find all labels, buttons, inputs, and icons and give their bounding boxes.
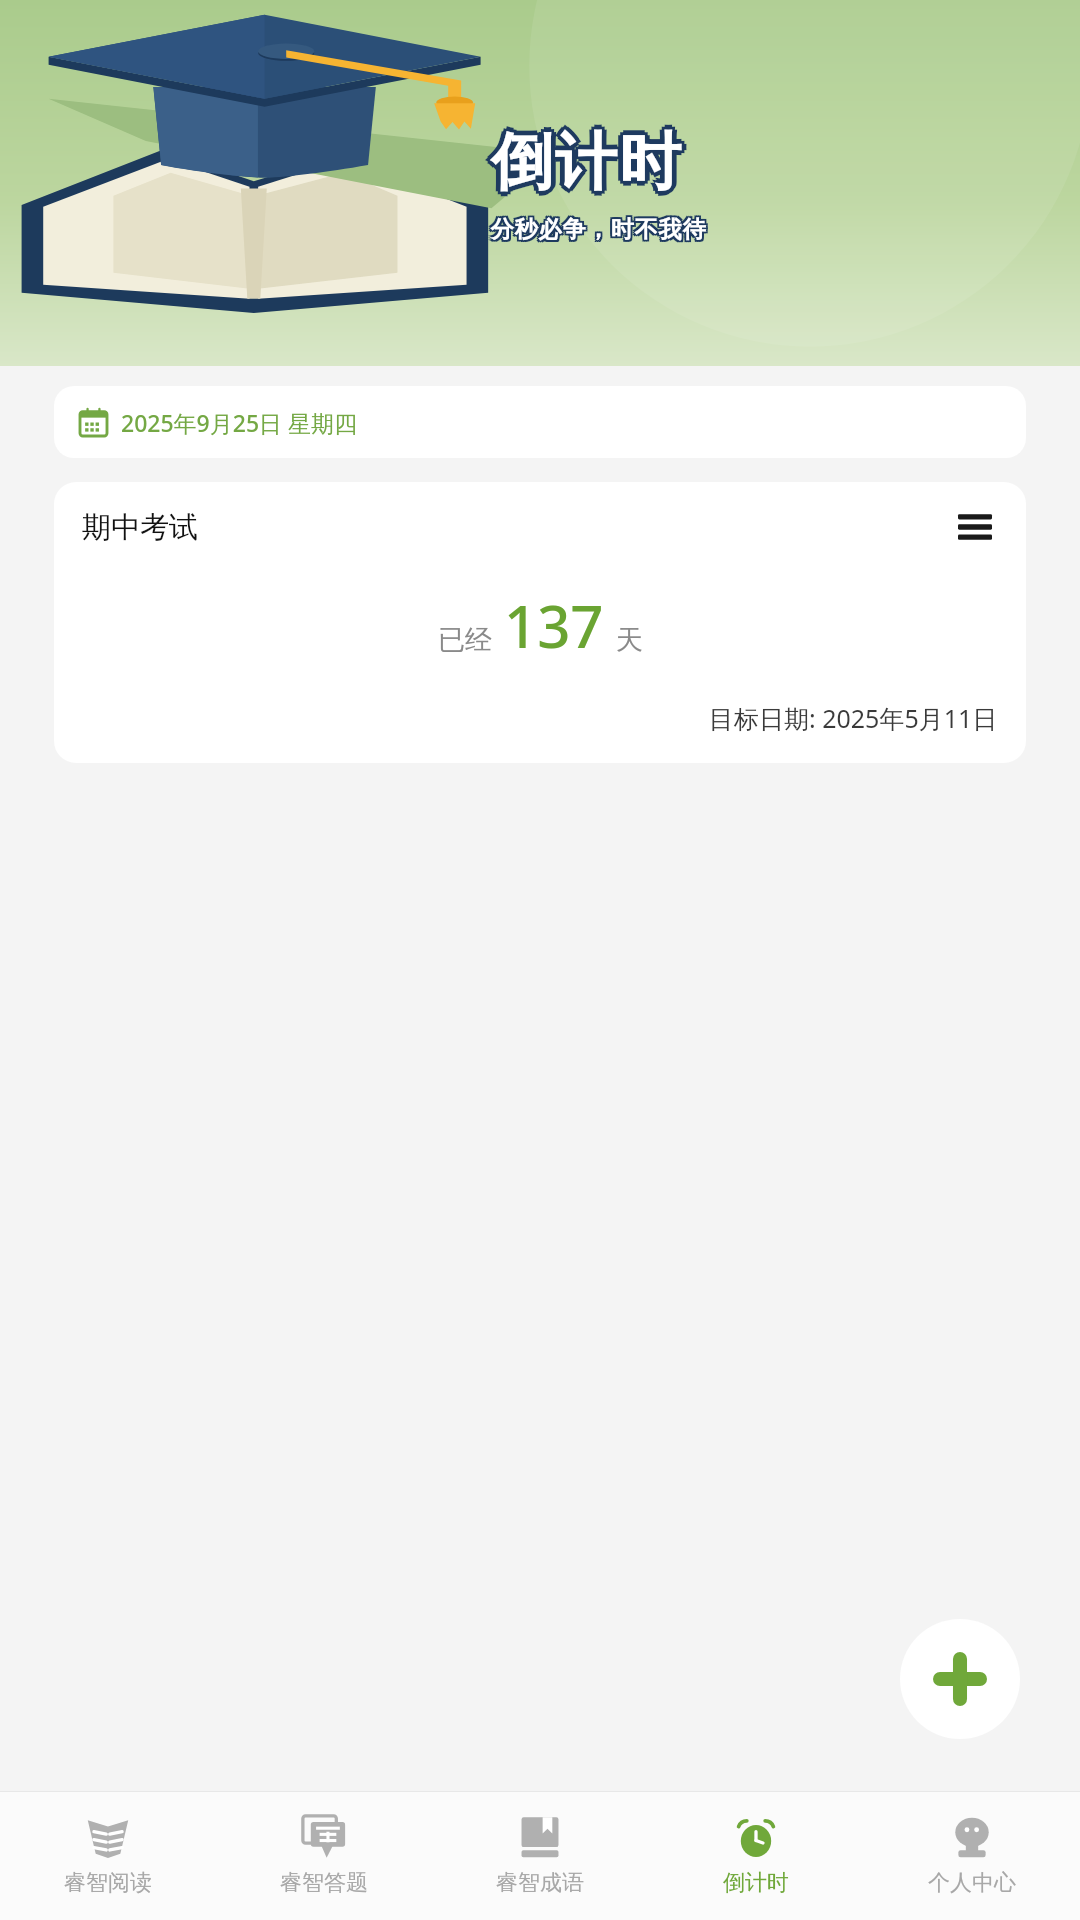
button[interactable]: 倒计时 (648, 1792, 864, 1920)
staticText: 倒计时 (490, 120, 682, 198)
staticText: 分秒必争，时不我待 (490, 217, 706, 246)
button[interactable]: Add countdown (900, 1619, 1020, 1739)
staticText: 倒计时 (485, 123, 677, 201)
button[interactable]: 2025年9月25日 星期四 (54, 386, 1026, 458)
staticText: 倒计时 (487, 123, 679, 201)
staticText: 分秒必争，时不我待 (492, 213, 708, 242)
staticText: 睿智答题 (280, 1869, 368, 1897)
staticText: 倒计时 (487, 126, 679, 204)
staticText: 分秒必争，时不我待 (490, 215, 706, 244)
button[interactable]: 睿智成语 (432, 1792, 648, 1920)
button[interactable]: 期中考试 (54, 482, 1026, 763)
staticText: 倒计时 (723, 1869, 789, 1897)
staticText: 已经 (438, 623, 492, 657)
staticText: 倒计时 (490, 118, 682, 196)
staticText: 倒计时 (487, 120, 679, 198)
staticText: 分秒必争，时不我待 (490, 213, 706, 242)
staticText: 倒计时 (493, 123, 685, 201)
staticText: 目标日期: 2025年5月11日 (709, 701, 998, 735)
staticText: 倒计时 (490, 128, 682, 206)
staticText: 2025年9月25日 星期四 (121, 407, 358, 438)
staticText: 期中考试 (82, 509, 198, 546)
staticText: 分秒必争，时不我待 (488, 215, 704, 244)
staticText: 分秒必争，时不我待 (488, 217, 704, 246)
staticText: 睿智阅读 (64, 1869, 152, 1897)
staticText: 倒计时 (493, 126, 685, 204)
staticText: 睿智成语 (496, 1869, 584, 1897)
button[interactable]: 个人中心 (864, 1792, 1080, 1920)
staticText: 分秒必争，时不我待 (488, 213, 704, 242)
button[interactable]: 睿智阅读 (0, 1792, 216, 1920)
staticText: 天 (616, 623, 643, 657)
staticText: 137 (504, 586, 604, 665)
button[interactable]: 睿智答题 (216, 1792, 432, 1920)
staticText: 个人中心 (928, 1869, 1016, 1897)
staticText: 分秒必争，时不我待 (492, 217, 708, 246)
staticText: 分秒必争，时不我待 (492, 215, 708, 244)
button[interactable]: More options (952, 504, 998, 550)
staticText: 倒计时 (495, 123, 687, 201)
staticText: 倒计时 (493, 120, 685, 198)
staticText: 倒计时 (490, 126, 682, 204)
staticText: 倒计时 (490, 123, 682, 201)
